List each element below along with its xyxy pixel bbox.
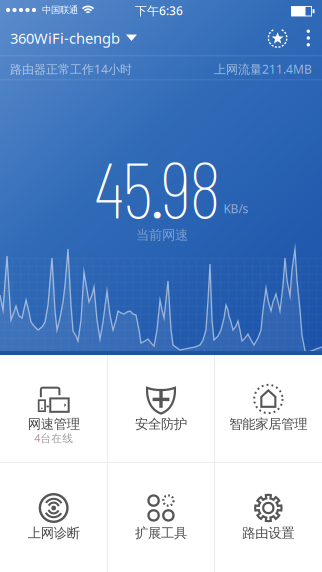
staticText: 路由器正常工作14小时 bbox=[10, 61, 132, 77]
button[interactable]: 更多 bbox=[303, 29, 316, 46]
staticText: 45.98 bbox=[94, 140, 222, 234]
staticText: 上网诊断 bbox=[28, 525, 80, 541]
button[interactable]: 会员 bbox=[265, 25, 291, 51]
button[interactable]: 360WiFi-chengb bbox=[0, 28, 137, 48]
staticText: 扩展工具 bbox=[135, 525, 187, 541]
staticText: 360WiFi-chengb bbox=[10, 28, 120, 48]
staticText: 安全防护 bbox=[135, 416, 187, 432]
button[interactable]: 上网诊断 bbox=[0, 462, 107, 572]
staticText: KB/s bbox=[223, 200, 248, 216]
staticText: 智能家居管理 bbox=[229, 416, 307, 432]
staticText: 中国联通 bbox=[42, 4, 78, 16]
button[interactable]: 网速管理 bbox=[0, 355, 107, 462]
button[interactable]: 安全防护 bbox=[107, 355, 215, 462]
button[interactable]: 智能家居管理 bbox=[215, 355, 322, 462]
staticText: 4台在线 bbox=[34, 431, 73, 445]
button[interactable]: 路由设置 bbox=[215, 462, 322, 572]
staticText: 上网流量211.4MB bbox=[214, 61, 312, 77]
staticText: 下午6:36 bbox=[135, 2, 183, 18]
button[interactable]: 扩展工具 bbox=[107, 462, 215, 572]
staticText: 网速管理 bbox=[28, 416, 80, 432]
staticText: 路由设置 bbox=[242, 525, 294, 541]
staticText: 当前网速 bbox=[136, 227, 188, 243]
